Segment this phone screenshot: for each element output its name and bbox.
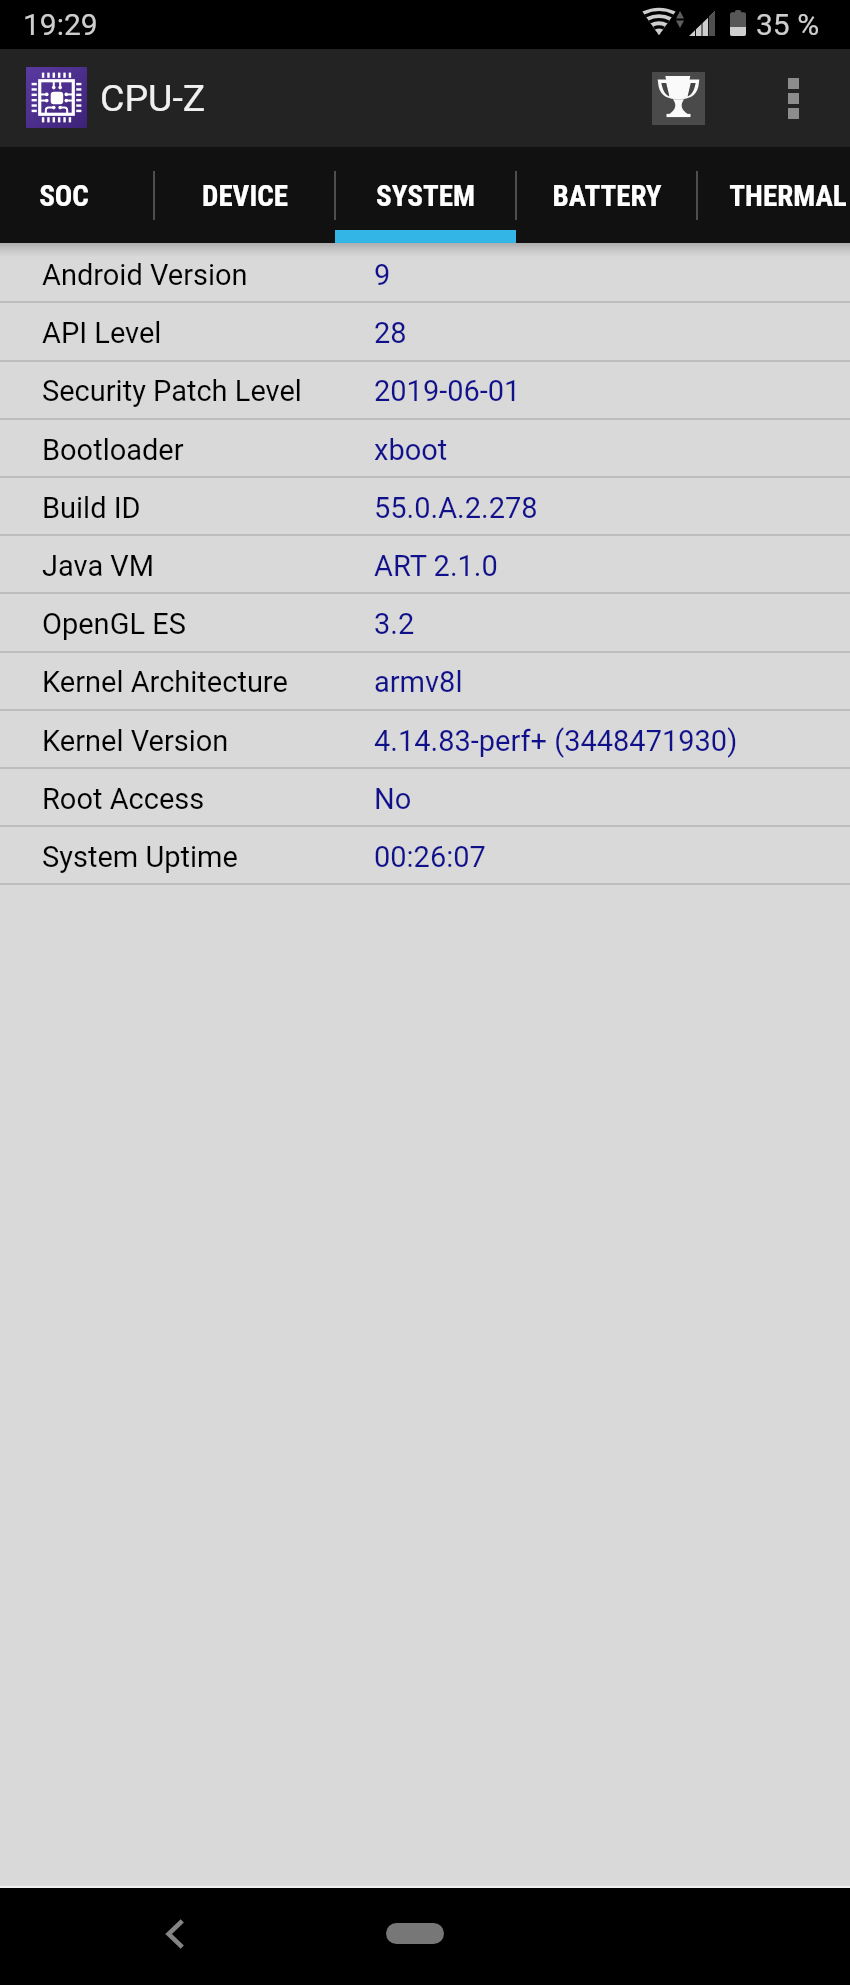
button[interactable]: Back	[135, 1894, 215, 1974]
button[interactable]: System Uptime	[0, 826, 850, 884]
button[interactable]: Kernel Architecture	[0, 651, 850, 709]
button[interactable]: Root Access	[0, 768, 850, 826]
button[interactable]: Java VM	[0, 535, 850, 593]
staticText: THERMAL	[729, 179, 847, 213]
button[interactable]: DEVICE	[154, 147, 335, 243]
staticText: Build ID	[42, 491, 141, 525]
button[interactable]: SYSTEM	[335, 147, 516, 243]
staticText: 55.0.A.2.278	[374, 491, 538, 525]
staticText: 4.14.83-perf+ (3448471930)	[374, 724, 738, 758]
staticText: No	[374, 782, 412, 816]
button[interactable]: Build ID	[0, 477, 850, 535]
staticText: BATTERY	[552, 179, 662, 213]
staticText: Bootloader	[42, 433, 184, 467]
button[interactable]: Kernel Version	[0, 710, 850, 768]
staticText: OpenGL ES	[42, 607, 186, 641]
staticText: Android Version	[42, 258, 248, 292]
staticText: CPU-Z	[100, 76, 206, 120]
staticText: 35 %	[756, 7, 820, 42]
staticText: System Uptime	[42, 840, 238, 874]
staticText: Kernel Architecture	[42, 665, 288, 699]
button[interactable]: Security Patch Level	[0, 360, 850, 418]
staticText: Kernel Version	[42, 724, 229, 758]
staticText: Java VM	[42, 549, 155, 583]
button[interactable]: SOC	[0, 147, 154, 243]
staticText: ART 2.1.0	[374, 549, 498, 583]
button[interactable]: More options	[745, 49, 842, 147]
staticText: xboot	[374, 433, 448, 467]
staticText: 9	[374, 258, 391, 292]
staticText: SOC	[39, 179, 89, 213]
button[interactable]: Bootloader	[0, 419, 850, 477]
staticText: 19:29	[23, 7, 98, 42]
button[interactable]: BATTERY	[516, 147, 697, 243]
staticText: Security Patch Level	[42, 374, 302, 408]
staticText: 28	[374, 316, 407, 350]
staticText: armv8l	[374, 665, 463, 699]
button[interactable]: Home	[386, 1923, 444, 1944]
staticText: Root Access	[42, 782, 205, 816]
staticText: SYSTEM	[376, 179, 475, 213]
staticText: 00:26:07	[374, 840, 486, 874]
button[interactable]: Benchmark	[648, 49, 708, 147]
button[interactable]: Android Version	[0, 244, 850, 302]
staticText: 2019-06-01	[374, 374, 521, 408]
button[interactable]: OpenGL ES	[0, 593, 850, 651]
button[interactable]: THERMAL	[697, 147, 850, 243]
staticText: API Level	[42, 316, 162, 350]
button[interactable]: API Level	[0, 302, 850, 360]
button[interactable]: CPU-Z home	[26, 48, 226, 146]
staticText: DEVICE	[202, 179, 288, 213]
staticText: 3.2	[374, 607, 415, 641]
